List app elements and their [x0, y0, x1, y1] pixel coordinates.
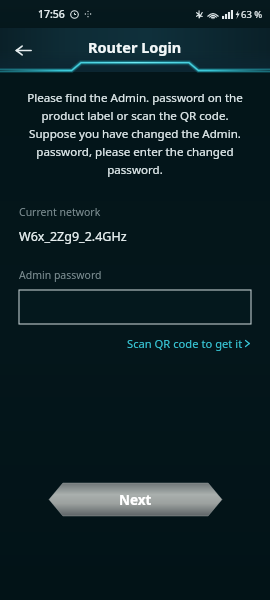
staticText: Please find the Admin. password on the p…	[24, 90, 246, 177]
staticText: Next	[119, 491, 152, 509]
staticText: 63 %	[241, 8, 263, 21]
button[interactable]: Scan QR code to get it	[127, 336, 251, 351]
staticText: Current network	[19, 205, 101, 219]
button[interactable]: Back	[8, 35, 38, 65]
staticText: W6x_2Zg9_2.4GHz	[19, 228, 127, 245]
staticText: 17:56	[38, 7, 65, 21]
button[interactable]	[19, 290, 251, 324]
button[interactable]: Next	[49, 483, 222, 516]
staticText: Router Login	[88, 37, 182, 57]
staticText: Admin password	[19, 268, 102, 282]
staticText: Scan QR code to get it	[127, 336, 243, 351]
